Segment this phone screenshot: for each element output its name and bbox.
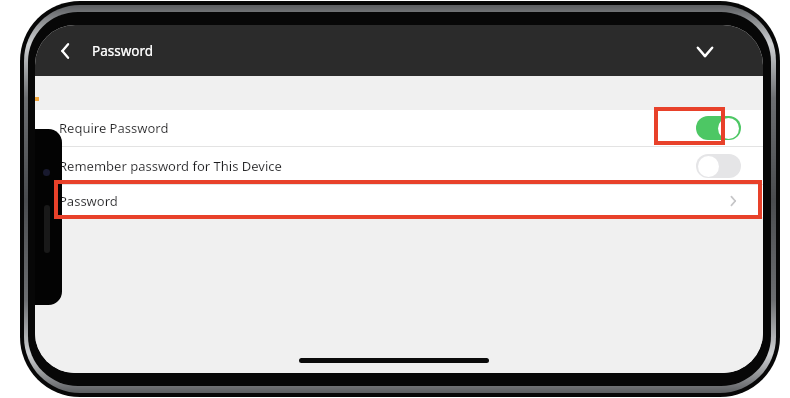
button[interactable]: Back [53,38,79,64]
staticText: Remember password for This Device [59,157,282,175]
button[interactable]: Collapse [690,36,720,66]
staticText: Password [59,192,118,210]
button[interactable]: Enabled [696,116,741,140]
button[interactable]: Password [35,185,763,217]
staticText: Password [92,42,154,60]
button[interactable]: Require Password [35,110,763,146]
button[interactable]: Remember password for This Device [35,147,763,184]
staticText: Require Password [59,119,169,137]
button[interactable]: Disabled [696,154,741,178]
